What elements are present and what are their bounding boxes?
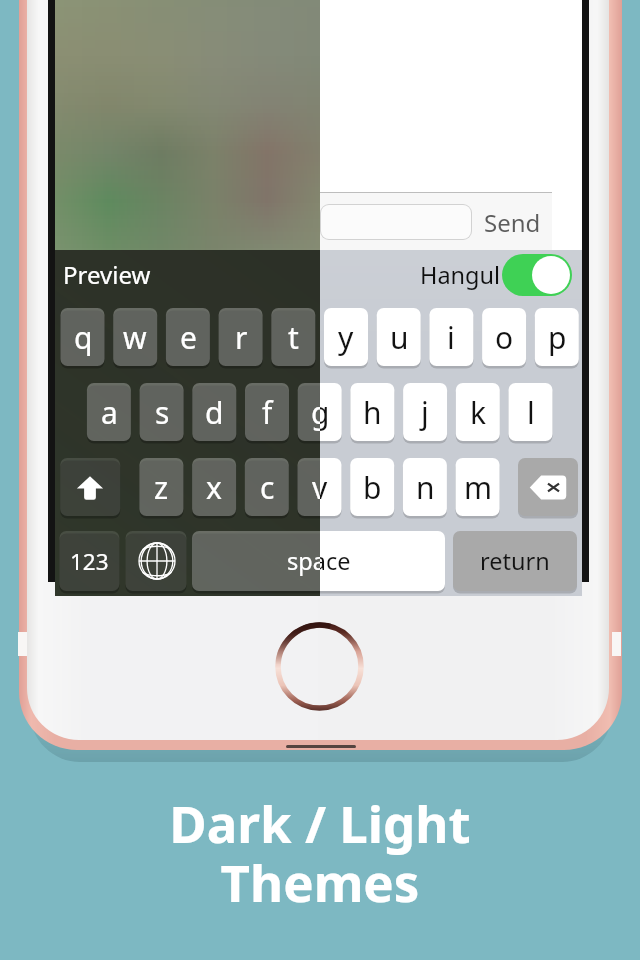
- staticText: l: [527, 392, 535, 433]
- button[interactable]: [535, 308, 579, 366]
- button[interactable]: [245, 383, 289, 441]
- staticText: w: [123, 317, 147, 358]
- staticText: v: [312, 467, 320, 508]
- button[interactable]: Backspace: [518, 458, 578, 516]
- button[interactable]: [192, 531, 445, 591]
- staticText: i: [447, 317, 455, 358]
- staticText: d: [205, 392, 224, 433]
- staticText: y: [338, 317, 354, 358]
- staticText: v: [312, 467, 328, 508]
- button[interactable]: [456, 458, 500, 516]
- button[interactable]: [219, 308, 263, 366]
- staticText: space: [287, 545, 351, 577]
- staticText: Send: [484, 206, 541, 239]
- button[interactable]: [377, 308, 421, 366]
- staticText: u: [390, 317, 409, 358]
- button[interactable]: [453, 531, 577, 591]
- button[interactable]: [482, 308, 526, 366]
- staticText: Hangul: [420, 259, 501, 291]
- button[interactable]: [298, 458, 342, 516]
- button[interactable]: [139, 458, 183, 516]
- button[interactable]: [403, 383, 447, 441]
- staticText: d: [205, 392, 224, 433]
- button[interactable]: [271, 308, 315, 366]
- button[interactable]: [61, 308, 105, 366]
- staticText: k: [470, 392, 487, 433]
- button[interactable]: [192, 383, 236, 441]
- staticText: f: [262, 392, 273, 433]
- button[interactable]: Change language: [126, 531, 187, 591]
- staticText: a: [101, 392, 118, 433]
- staticText: e: [180, 317, 197, 358]
- staticText: e: [180, 317, 197, 358]
- button[interactable]: Send: [472, 201, 552, 243]
- staticText: p: [548, 317, 567, 358]
- staticText: q: [74, 317, 93, 358]
- staticText: s: [155, 392, 170, 433]
- staticText: b: [363, 467, 382, 508]
- button[interactable]: [456, 383, 500, 441]
- staticText: t: [288, 317, 299, 358]
- button[interactable]: [140, 383, 184, 441]
- button[interactable]: [59, 531, 119, 591]
- button[interactable]: [298, 383, 342, 441]
- staticText: n: [416, 467, 435, 508]
- staticText: x: [206, 467, 222, 508]
- button[interactable]: [192, 458, 236, 516]
- staticText: o: [495, 317, 514, 358]
- button[interactable]: [350, 383, 394, 441]
- button[interactable]: [245, 458, 289, 516]
- staticText: 123: [70, 546, 109, 577]
- staticText: c: [260, 467, 275, 508]
- button[interactable]: [509, 383, 553, 441]
- staticText: h: [363, 392, 382, 433]
- button[interactable]: [87, 383, 131, 441]
- staticText: space: [287, 545, 320, 577]
- button[interactable]: [350, 458, 394, 516]
- staticText: w: [123, 317, 147, 358]
- button[interactable]: [403, 458, 447, 516]
- staticText: return: [480, 545, 550, 577]
- staticText: j: [421, 392, 429, 433]
- staticText: z: [154, 467, 169, 508]
- staticText: g: [311, 392, 330, 433]
- staticText: Dark / Light Themes: [0, 788, 640, 917]
- staticText: r: [235, 317, 248, 358]
- staticText: Preview: [63, 258, 151, 291]
- staticText: a: [101, 392, 118, 433]
- staticText: f: [262, 392, 273, 433]
- staticText: s: [155, 392, 170, 433]
- button[interactable]: [166, 308, 210, 366]
- button[interactable]: Shift: [60, 458, 120, 516]
- staticText: c: [260, 467, 275, 508]
- staticText: g: [311, 392, 320, 433]
- staticText: r: [235, 317, 248, 358]
- staticText: z: [154, 467, 169, 508]
- button[interactable]: [324, 308, 368, 366]
- button[interactable]: [429, 308, 473, 366]
- button[interactable]: [113, 308, 157, 366]
- staticText: q: [74, 317, 93, 358]
- button[interactable]: Hangul toggle: [502, 254, 572, 296]
- staticText: 123: [70, 546, 109, 577]
- staticText: m: [464, 467, 493, 508]
- staticText: t: [288, 317, 299, 358]
- staticText: x: [206, 467, 222, 508]
